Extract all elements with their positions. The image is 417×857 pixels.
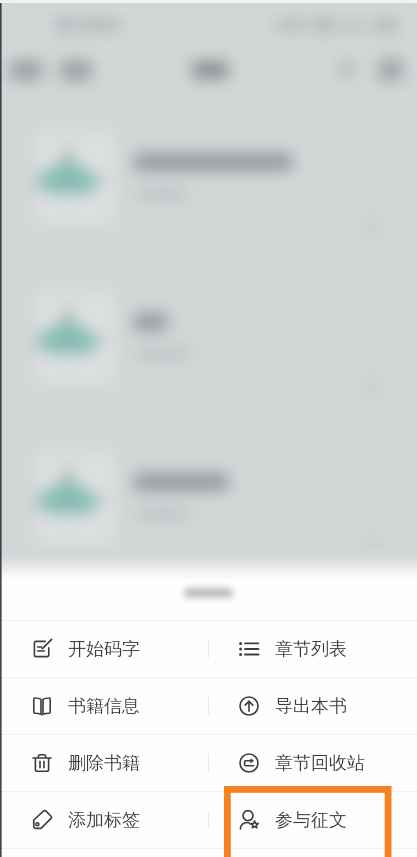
- button[interactable]: 参与征文: [209, 792, 417, 848]
- button[interactable]: 添加标签: [0, 792, 208, 848]
- button[interactable]: 章节回收站: [209, 735, 417, 791]
- other: 参与征文: [239, 810, 259, 830]
- staticText: 章节回收站: [275, 752, 365, 775]
- staticText: 书籍信息: [68, 695, 140, 718]
- other: 开始码字: [32, 639, 52, 659]
- staticText: 导出本书: [275, 695, 347, 718]
- button[interactable]: 删除书籍: [0, 735, 208, 791]
- button[interactable]: 开始码字: [0, 621, 208, 677]
- other: 章节列表: [239, 639, 259, 659]
- staticText: 参与征文: [275, 809, 347, 832]
- button[interactable]: 导出本书: [209, 678, 417, 734]
- staticText: 删除书籍: [68, 752, 140, 775]
- staticText: 章节列表: [275, 638, 347, 661]
- other: 添加标签: [32, 810, 52, 830]
- button[interactable]: 章节列表: [209, 621, 417, 677]
- other: 导出本书: [239, 696, 259, 716]
- button[interactable]: 书籍信息: [0, 678, 208, 734]
- staticText: 开始码字: [68, 638, 140, 661]
- other: 章节回收站: [239, 753, 259, 773]
- staticText: 添加标签: [68, 809, 140, 832]
- other: 删除书籍: [32, 753, 52, 773]
- other: 书籍信息: [32, 696, 52, 716]
